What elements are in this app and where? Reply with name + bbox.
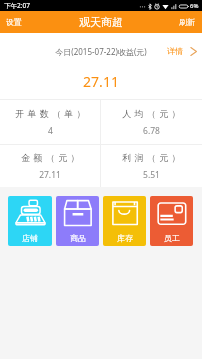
- button[interactable]: 商品: [56, 196, 99, 246]
- staticText: 4: [48, 125, 53, 137]
- staticText: 5.51: [143, 169, 160, 181]
- button[interactable]: 库存: [103, 196, 146, 246]
- staticText: 利润（元）: [122, 152, 184, 163]
- staticText: 员工: [164, 233, 180, 243]
- staticText: 人均（元）: [122, 108, 184, 119]
- staticText: 商品: [70, 233, 86, 243]
- button[interactable]: 开单数（单）: [0, 100, 100, 144]
- staticText: 6.78: [143, 125, 160, 137]
- staticText: 开单数（单）: [15, 108, 89, 119]
- staticText: 金额（元）: [21, 152, 83, 163]
- staticText: 观天商超: [79, 15, 123, 29]
- staticText: 27.11: [0, 72, 202, 91]
- staticText: 库存: [117, 233, 133, 243]
- staticText: 今日(2015-07-22)收益(元): [55, 46, 147, 57]
- button[interactable]: 刷新: [172, 13, 202, 31]
- button[interactable]: 店铺: [8, 196, 52, 246]
- button[interactable]: 利润（元）: [101, 145, 202, 187]
- staticText: 刷新: [179, 17, 195, 27]
- staticText: 27.11: [39, 169, 61, 181]
- button[interactable]: 人均（元）: [101, 100, 202, 144]
- staticText: 设置: [6, 17, 22, 27]
- button[interactable]: 金额（元）: [0, 145, 100, 187]
- staticText: 下午2:07: [4, 1, 30, 10]
- button[interactable]: 设置: [0, 13, 28, 31]
- button[interactable]: 员工: [150, 196, 193, 246]
- staticText: 店铺: [22, 233, 38, 243]
- staticText: 6%: [190, 2, 199, 10]
- staticText: 详情: [167, 46, 183, 56]
- button[interactable]: 详情: [167, 46, 202, 56]
